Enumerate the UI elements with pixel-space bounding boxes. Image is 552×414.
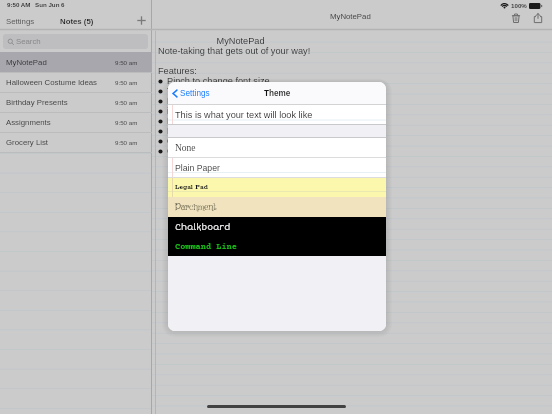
button[interactable]: Search [3, 34, 148, 49]
button[interactable]: Delete [508, 10, 524, 26]
button[interactable]: Parchment [168, 197, 386, 217]
staticText: Note-taking that gets out of your way! [158, 46, 311, 56]
staticText: Theme [264, 89, 291, 98]
button[interactable]: Command Line [168, 237, 386, 256]
staticText: MyNotePad [6, 58, 47, 67]
staticText: MyNotePad [330, 12, 371, 21]
button[interactable]: Assignments [0, 112, 152, 132]
button[interactable]: Grocery List [0, 132, 152, 152]
staticText: Sun Jun 6 [35, 1, 65, 8]
button[interactable]: Settings [172, 89, 210, 98]
staticText: Markdown [167, 126, 210, 136]
staticText: Dark mode [167, 116, 212, 126]
button[interactable]: Share [530, 10, 546, 26]
staticText: Checklists [167, 146, 209, 156]
staticText: MyNotePad [158, 36, 323, 46]
staticText: Search [16, 37, 41, 46]
button[interactable]: None [168, 138, 386, 158]
staticText: 9:50 am [115, 99, 138, 106]
staticText: Export as PDF [167, 96, 227, 106]
staticText: Halloween Costume Ideas [6, 78, 98, 87]
button[interactable]: New note [132, 11, 150, 29]
staticText: Birthday Presents [6, 98, 68, 107]
staticText: None [175, 143, 196, 154]
staticText: 9:50 AM [7, 1, 31, 8]
button[interactable]: Chalkboard [168, 217, 386, 237]
button[interactable]: Birthday Presents [0, 92, 152, 112]
staticText: Pinch to change font size [167, 76, 270, 86]
staticText: Command Line [175, 242, 237, 252]
staticText: 9:50 am [115, 79, 138, 86]
staticText: This is what your text will look like [175, 110, 313, 120]
button[interactable]: Legal Pad [168, 178, 386, 197]
staticText: 9:50 am [115, 119, 138, 126]
button[interactable]: MyNotePad [0, 52, 152, 72]
staticText: Parchment [175, 201, 217, 214]
staticText: 100% [511, 2, 527, 9]
staticText: Quick search [167, 136, 221, 146]
staticText: Features: [158, 66, 197, 76]
button[interactable]: Plain Paper [168, 158, 386, 178]
staticText: Assignments [6, 118, 51, 127]
staticText: Settings [6, 17, 35, 26]
staticText: Grocery List [6, 138, 49, 147]
staticText: Chalkboard [175, 222, 231, 233]
staticText: Notes (5) [60, 17, 94, 26]
staticText: Themes [167, 86, 201, 96]
staticText: 9:50 am [115, 139, 138, 146]
staticText: Plain Paper [175, 163, 220, 173]
staticText: Settings [180, 89, 210, 98]
button[interactable]: Settings [6, 17, 35, 26]
staticText: Legal Pad [175, 183, 208, 192]
button[interactable]: Halloween Costume Ideas [0, 72, 152, 92]
staticText: 9:50 am [115, 59, 138, 66]
staticText: iCloud sync [167, 106, 215, 116]
